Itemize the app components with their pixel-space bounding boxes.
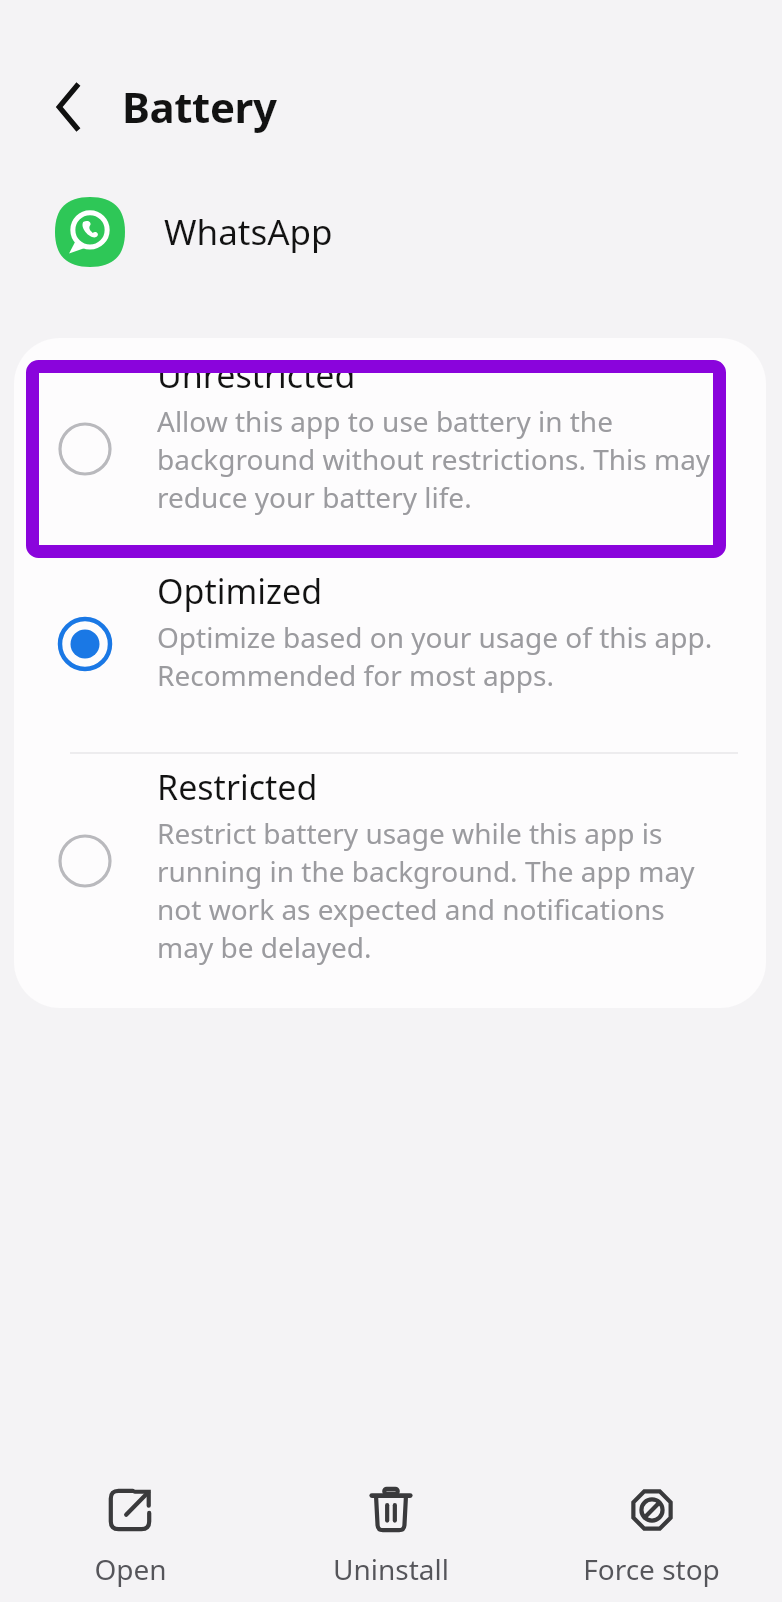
button[interactable]: Restricted [14, 758, 766, 1008]
staticText: Restrict battery usage while this app is [157, 814, 663, 852]
staticText: background without restrictions. This ma… [157, 440, 711, 478]
staticText: Restricted [157, 764, 318, 810]
other: Force stop [628, 1486, 676, 1534]
other: Uninstall [367, 1486, 415, 1534]
button[interactable]: Back [36, 76, 98, 138]
button[interactable]: WhatsApp [0, 186, 782, 278]
other: Open [106, 1486, 154, 1534]
staticText: reduce your battery life. [157, 478, 472, 516]
staticText: Recommended for most apps. [157, 656, 554, 694]
staticText: WhatsApp [164, 208, 333, 256]
staticText: Force stop [583, 1550, 720, 1588]
button[interactable]: Uninstall [260, 1434, 521, 1594]
staticText: Optimized [157, 568, 323, 614]
staticText: Optimize based on your usage of this app… [157, 618, 713, 656]
staticText: Open [94, 1550, 167, 1588]
button[interactable]: Optimized [14, 562, 766, 752]
button[interactable]: Force stop [521, 1434, 782, 1594]
staticText: running in the background. The app may [157, 852, 695, 890]
staticText: not work as expected and notifications [157, 890, 665, 928]
staticText: may be delayed. [157, 928, 372, 966]
button[interactable]: Unrestricted [14, 346, 766, 558]
button[interactable]: Open [0, 1434, 260, 1594]
staticText: Battery [122, 78, 277, 135]
staticText: Unrestricted [157, 352, 356, 398]
staticText: Allow this app to use battery in the [157, 402, 613, 440]
staticText: Uninstall [333, 1550, 449, 1588]
